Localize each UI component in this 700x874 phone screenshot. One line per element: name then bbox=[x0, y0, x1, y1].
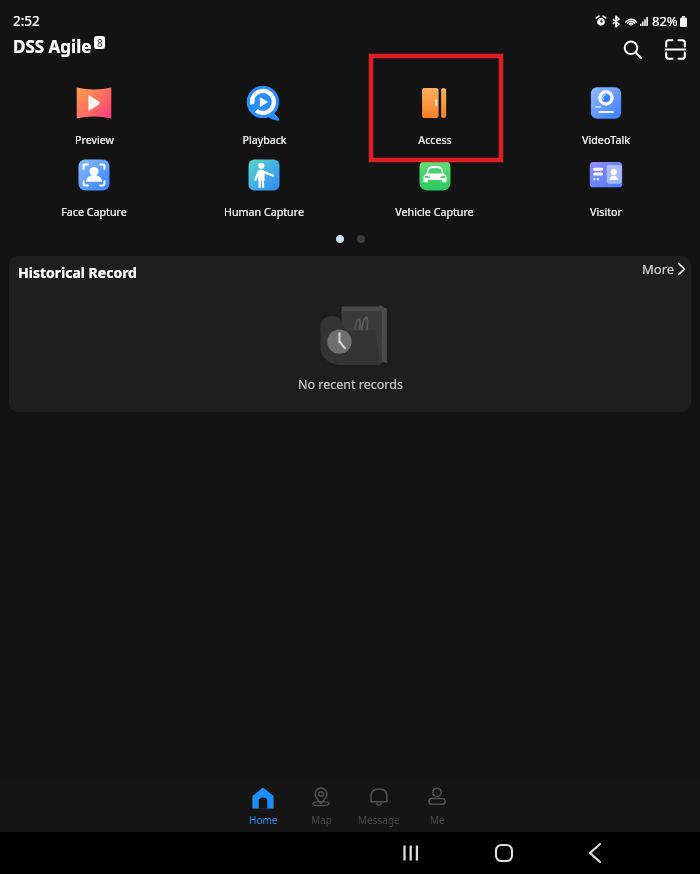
staticText: Playback bbox=[242, 133, 287, 148]
staticText: Message bbox=[358, 813, 400, 827]
staticText: Preview bbox=[75, 133, 114, 148]
button[interactable]: Vehicle Capture bbox=[349, 152, 520, 220]
button[interactable]: Home bbox=[234, 786, 292, 827]
button[interactable]: Scan QR code bbox=[658, 35, 692, 63]
staticText: More bbox=[642, 260, 675, 278]
staticText: 82% bbox=[652, 12, 678, 30]
button[interactable]: Face Capture bbox=[9, 152, 179, 220]
button[interactable]: Playback bbox=[179, 80, 349, 148]
button[interactable]: Visitor bbox=[520, 152, 691, 220]
button[interactable]: VideoTalk bbox=[520, 80, 691, 148]
staticText: 8 bbox=[97, 36, 103, 49]
button[interactable]: Preview bbox=[9, 80, 179, 148]
staticText: Human Capture bbox=[224, 205, 304, 220]
staticText: VideoTalk bbox=[582, 133, 630, 148]
staticText: Access bbox=[418, 133, 452, 148]
staticText: Home bbox=[249, 813, 278, 827]
button[interactable]: Map bbox=[292, 786, 350, 827]
button[interactable]: More bbox=[638, 256, 690, 282]
staticText: Historical Record bbox=[18, 263, 137, 282]
staticText: 2:52 bbox=[13, 12, 40, 30]
staticText: Map bbox=[311, 813, 332, 827]
staticText: Face Capture bbox=[61, 205, 127, 220]
button[interactable]: Me bbox=[408, 786, 466, 827]
staticText: Vehicle Capture bbox=[395, 205, 474, 220]
button[interactable]: Search bbox=[615, 35, 649, 63]
button[interactable]: Message bbox=[350, 786, 408, 827]
button[interactable]: Access bbox=[349, 80, 520, 148]
staticText: DSS Agile bbox=[13, 35, 92, 58]
staticText: No recent records bbox=[298, 376, 403, 393]
staticText: Visitor bbox=[590, 205, 622, 220]
button[interactable]: Human Capture bbox=[179, 152, 349, 220]
staticText: Me bbox=[430, 813, 445, 827]
